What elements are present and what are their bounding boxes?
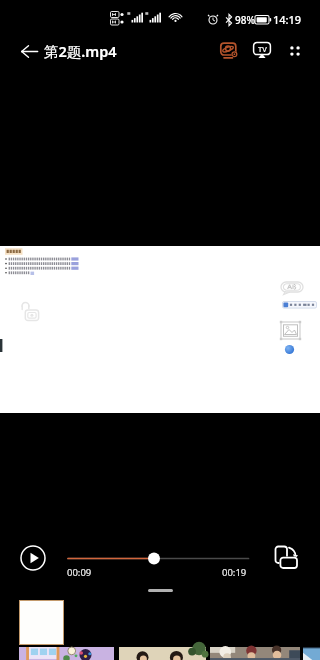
- button[interactable]: Play: [19, 544, 47, 572]
- staticText: 00:09: [67, 566, 92, 579]
- button[interactable]: Back: [11, 33, 48, 70]
- button[interactable]: Rotate screen: [271, 542, 301, 572]
- button[interactable]: Cast to device: [215, 37, 243, 65]
- staticText: 98%: [235, 13, 255, 27]
- button[interactable]: Clip 3: [210, 647, 300, 660]
- button[interactable]: Clip 4: [303, 647, 320, 660]
- button[interactable]: TV: [248, 37, 276, 65]
- staticText: 第2题.mp4: [44, 41, 117, 61]
- button[interactable]: Clip 2: [119, 647, 206, 660]
- staticText: TV: [258, 44, 267, 54]
- staticText: 14:19: [273, 12, 302, 27]
- button[interactable]: Seek bar: [62, 549, 256, 567]
- staticText: 00:19: [222, 566, 247, 579]
- button[interactable]: More options: [281, 37, 309, 65]
- button[interactable]: Clip 1: [19, 647, 114, 660]
